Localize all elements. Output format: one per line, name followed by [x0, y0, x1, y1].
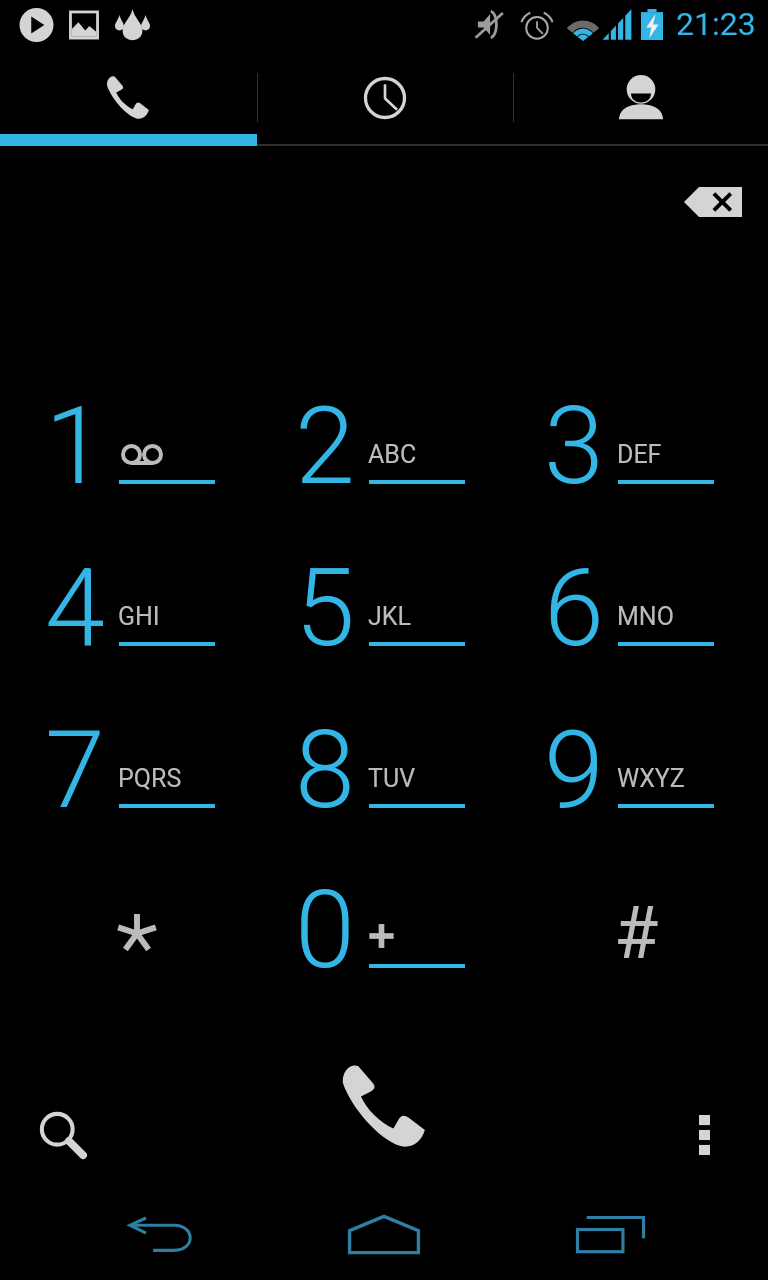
- button[interactable]: 3: [509, 351, 758, 512]
- button[interactable]: Delete: [679, 182, 747, 222]
- staticText: 0: [295, 867, 355, 994]
- button[interactable]: Search: [14, 1088, 114, 1182]
- staticText: 21:23: [676, 5, 756, 43]
- button[interactable]: 5: [260, 513, 509, 674]
- button[interactable]: #: [509, 835, 758, 996]
- button[interactable]: 7: [10, 675, 259, 836]
- staticText: PQRS: [118, 764, 182, 793]
- staticText: 3: [544, 383, 604, 510]
- button[interactable]: 9: [509, 675, 758, 836]
- staticText: TUV: [368, 764, 416, 793]
- button[interactable]: [10, 835, 259, 996]
- button[interactable]: More options: [654, 1088, 754, 1182]
- staticText: MNO: [617, 602, 674, 631]
- button[interactable]: 6: [509, 513, 758, 674]
- button[interactable]: 1: [10, 351, 259, 512]
- staticText: 9: [544, 707, 604, 834]
- staticText: 6: [544, 545, 604, 672]
- button[interactable]: Contacts: [512, 52, 768, 135]
- button[interactable]: Call history: [256, 52, 512, 135]
- staticText: #: [614, 891, 659, 975]
- button[interactable]: Home: [304, 1188, 464, 1280]
- staticText: ABC: [368, 440, 417, 469]
- staticText: JKL: [368, 602, 411, 631]
- button[interactable]: Back: [80, 1188, 240, 1280]
- button[interactable]: Recent apps: [530, 1188, 690, 1280]
- button[interactable]: 8: [260, 675, 509, 836]
- staticText: DEF: [617, 440, 662, 469]
- button[interactable]: 4: [10, 513, 259, 674]
- button[interactable]: 0: [260, 835, 509, 996]
- staticText: 7: [45, 707, 105, 834]
- staticText: 8: [295, 707, 355, 834]
- staticText: 4: [45, 545, 105, 672]
- staticText: GHI: [118, 602, 160, 631]
- button[interactable]: Call: [324, 1050, 444, 1164]
- staticText: 2: [295, 383, 355, 510]
- staticText: WXYZ: [617, 764, 685, 793]
- staticText: 5: [295, 545, 355, 672]
- staticText: 1: [45, 383, 105, 510]
- button[interactable]: 2: [260, 351, 509, 512]
- button[interactable]: Dial pad: [0, 52, 256, 135]
